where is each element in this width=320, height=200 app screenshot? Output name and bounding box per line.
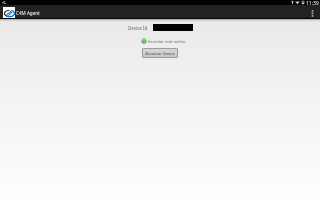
staticText: Servidor está online.	[148, 39, 187, 44]
button[interactable]: C4M Agent home	[3, 7, 15, 19]
button[interactable]: Atualizar Status	[142, 48, 178, 58]
staticText: C4M Agent	[16, 10, 40, 16]
staticText: Device Id	[128, 25, 148, 31]
button[interactable]: More options	[307, 5, 320, 18]
staticText: 11:39	[306, 0, 319, 5]
staticText: Atualizar Status	[145, 51, 175, 56]
